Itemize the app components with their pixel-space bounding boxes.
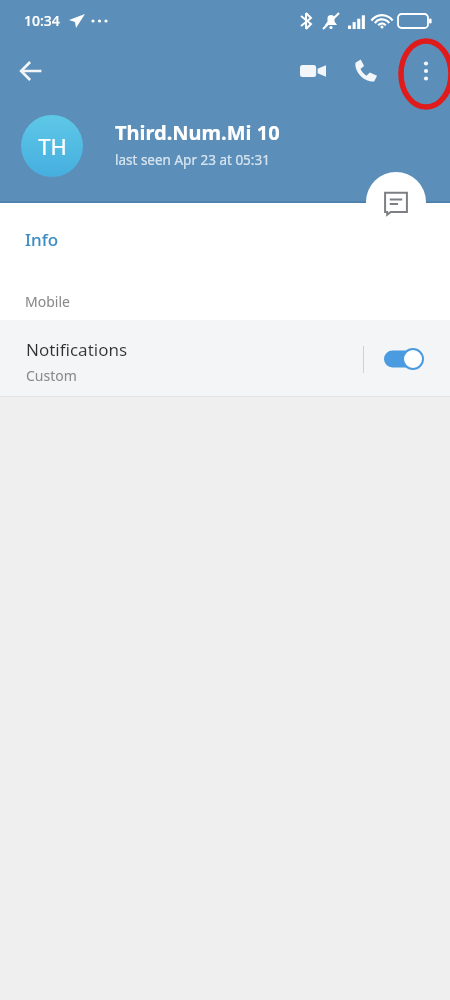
button[interactable]: Info [0, 228, 450, 251]
button[interactable]: Send message [366, 172, 426, 232]
staticText: Custom [26, 366, 77, 385]
button[interactable]: More options [404, 49, 448, 93]
button[interactable]: Mobile [0, 292, 450, 311]
button[interactable]: TH [0, 110, 450, 172]
button[interactable]: Back [9, 49, 53, 93]
staticText: Notifications [26, 338, 128, 361]
staticText: 10:34 [24, 11, 60, 30]
button[interactable]: Call [344, 49, 388, 93]
button[interactable]: Notifications toggle, on [378, 346, 430, 372]
staticText: TH [38, 131, 67, 161]
staticText: Info [25, 228, 59, 251]
staticText: last seen Apr 23 at 05:31 [115, 151, 270, 169]
button[interactable]: Notifications [0, 320, 450, 397]
staticText: Mobile [25, 292, 70, 311]
staticText: Third.Num.Mi 10 [115, 119, 280, 146]
button[interactable]: Video call [291, 49, 335, 93]
